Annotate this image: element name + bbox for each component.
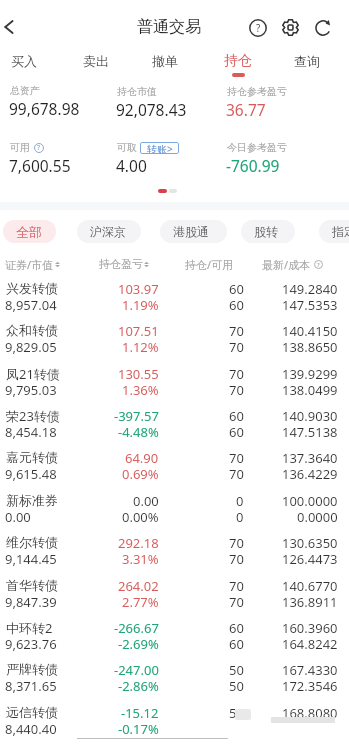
staticText: 264.02: [118, 577, 159, 595]
staticText: 1.19%: [122, 296, 159, 314]
staticText: 0.00: [133, 492, 159, 510]
staticText: 卖出: [83, 53, 109, 69]
staticText: 9,795.03: [5, 381, 57, 399]
staticText: 新标准券: [6, 492, 58, 508]
button[interactable]: 荣23转债: [0, 406, 349, 448]
staticText: 130.55: [118, 365, 159, 383]
staticText: 撤单: [152, 53, 178, 69]
button[interactable]: 众和转债: [0, 321, 349, 363]
button[interactable]: 股转: [241, 220, 295, 243]
staticText: -247.00: [114, 661, 159, 679]
staticText: 168.8080: [282, 704, 338, 722]
staticText: 107.51: [118, 322, 159, 340]
staticText: 149.2840: [282, 280, 338, 298]
staticText: 严牌转债: [6, 661, 58, 677]
staticText: 167.4330: [282, 661, 338, 679]
staticText: 中环转2: [6, 619, 53, 637]
staticText: 0: [236, 508, 244, 526]
staticText: 9,829.05: [5, 338, 57, 356]
staticText: 60: [229, 619, 244, 637]
button[interactable]: 兴发转债: [0, 279, 349, 321]
staticText: 8,371.65: [5, 677, 57, 695]
staticText: 164.8242: [282, 635, 338, 653]
staticText: 维尔转债: [6, 534, 58, 550]
staticText: 136.8911: [282, 593, 338, 611]
button[interactable]: Refresh: [310, 15, 336, 41]
button[interactable]: 转账>: [140, 142, 179, 154]
staticText: 70: [229, 449, 244, 467]
staticText: 99,678.98: [9, 98, 80, 119]
staticText: 100.0000: [282, 492, 338, 510]
button[interactable]: 全部: [3, 220, 56, 243]
staticText: 0: [236, 492, 244, 510]
staticText: 持仓市值: [117, 85, 157, 98]
button[interactable]: Help: [245, 15, 271, 41]
staticText: 9,623.76: [5, 635, 57, 653]
button[interactable]: 指定: [319, 220, 349, 243]
staticText: 138.0499: [282, 381, 338, 399]
button[interactable]: Info: [33, 142, 44, 153]
staticText: 70: [229, 550, 244, 568]
staticText: 126.4473: [282, 550, 338, 568]
staticText: 普通交易: [137, 17, 201, 37]
staticText: 160.3960: [282, 619, 338, 637]
staticText: 3.31%: [122, 550, 159, 568]
staticText: ?: [37, 143, 41, 153]
staticText: 首华转债: [6, 577, 58, 593]
staticText: 全部: [16, 224, 42, 240]
button[interactable]: 持仓: [204, 47, 272, 78]
staticText: 50: [229, 704, 244, 722]
staticText: 103.97: [118, 280, 159, 298]
staticText: 4.00: [116, 155, 147, 176]
staticText: 今日参考盈亏: [227, 141, 287, 154]
button[interactable]: Back: [0, 11, 25, 43]
staticText: 292.18: [118, 534, 159, 552]
staticText: 9,847.39: [5, 593, 57, 611]
staticText: 64.90: [125, 449, 159, 467]
staticText: 股转: [254, 224, 278, 239]
staticText: -397.57: [114, 407, 159, 425]
staticText: 8,454.18: [5, 423, 57, 441]
staticText: 最新/成本: [262, 257, 311, 272]
staticText: 持仓: [224, 52, 252, 70]
staticText: 70: [229, 322, 244, 340]
button[interactable]: 查询: [273, 47, 341, 78]
button[interactable]: 远信转债: [0, 703, 349, 745]
staticText: 8,957.04: [5, 296, 57, 314]
button[interactable]: 凤21转债: [0, 364, 349, 406]
button[interactable]: 撤单: [131, 47, 199, 78]
staticText: -0.17%: [118, 720, 159, 738]
staticText: 可用: [10, 141, 30, 154]
staticText: 7,600.55: [9, 155, 71, 176]
staticText: 港股通: [173, 224, 209, 239]
staticText: 0.00%: [122, 508, 159, 526]
staticText: 2.77%: [122, 593, 159, 611]
staticText: 0.69%: [122, 465, 159, 483]
button[interactable]: Settings: [277, 14, 303, 40]
staticText: 嘉元转债: [6, 449, 58, 465]
staticText: 1.12%: [122, 338, 159, 356]
button[interactable]: 首华转债: [0, 576, 349, 618]
staticText: 50: [229, 661, 244, 679]
staticText: 持仓盈亏: [99, 257, 143, 271]
staticText: 持仓参考盈亏: [227, 85, 287, 98]
button[interactable]: 新标准券: [0, 491, 349, 533]
button[interactable]: 中环转2: [0, 618, 349, 660]
staticText: 远信转债: [6, 704, 58, 720]
button[interactable]: 买入: [0, 47, 58, 78]
staticText: 沪深京: [90, 224, 126, 239]
staticText: 60: [229, 280, 244, 298]
staticText: 1.36%: [122, 381, 159, 399]
button[interactable]: 港股通: [160, 220, 227, 243]
staticText: 137.3640: [282, 449, 338, 467]
staticText: 70: [229, 534, 244, 552]
button[interactable]: 维尔转债: [0, 533, 349, 575]
button[interactable]: 嘉元转债: [0, 448, 349, 490]
button[interactable]: 沪深京: [77, 220, 141, 243]
button[interactable]: 卖出: [62, 47, 130, 78]
staticText: 138.8650: [282, 338, 338, 356]
staticText: 持仓/可用: [185, 257, 234, 272]
button[interactable]: 严牌转债: [0, 660, 349, 702]
staticText: 70: [229, 465, 244, 483]
staticText: 147.5138: [282, 423, 338, 441]
